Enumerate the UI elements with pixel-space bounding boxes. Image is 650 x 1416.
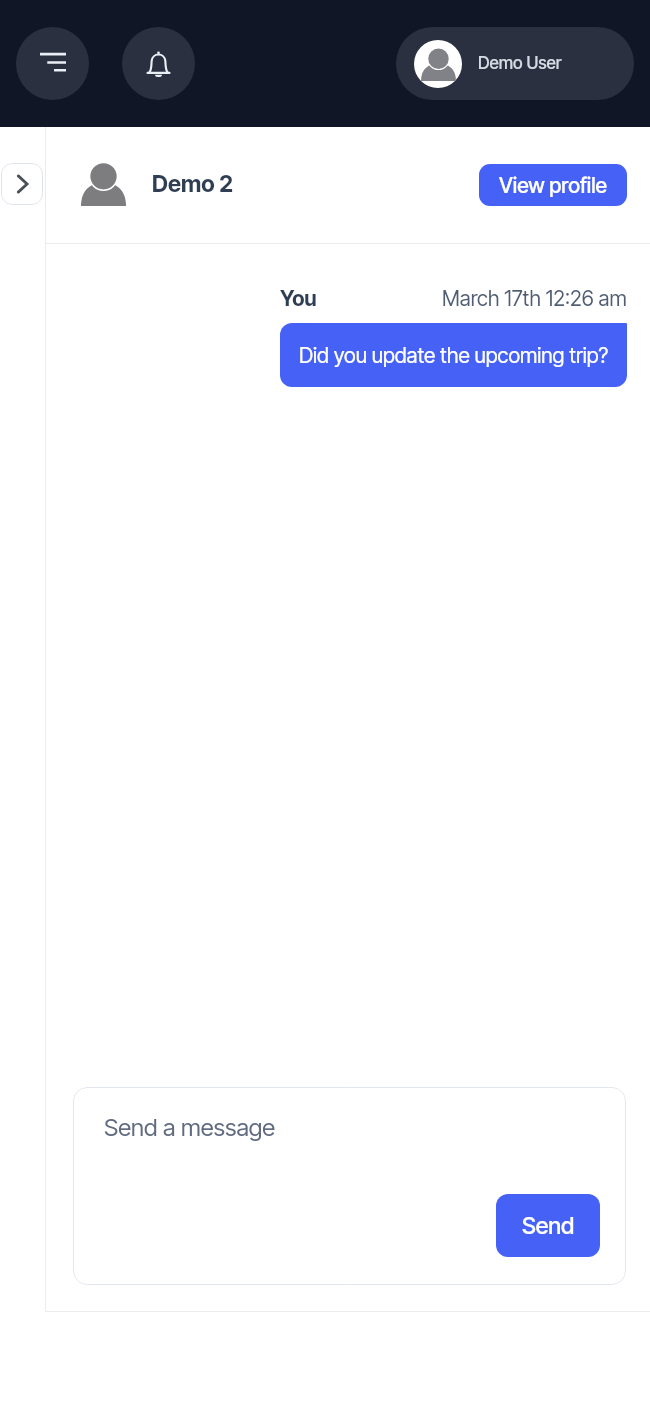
- staticText: View profile: [499, 173, 607, 198]
- button[interactable]: Notifications: [122, 27, 195, 100]
- staticText: Demo User: [478, 53, 562, 74]
- button[interactable]: Demo 2: [81, 162, 233, 209]
- button[interactable]: View profile: [479, 164, 627, 206]
- staticText: Did you update the upcoming trip?: [299, 343, 609, 368]
- staticText: March 17th 12:26 am: [442, 286, 627, 311]
- staticText: Send a message: [104, 1113, 276, 1142]
- button[interactable]: Demo User: [396, 27, 634, 100]
- button[interactable]: Menu: [16, 27, 89, 100]
- button[interactable]: Send a message: [73, 1087, 626, 1285]
- button[interactable]: Expand sidebar: [1, 163, 43, 205]
- staticText: You: [280, 286, 317, 311]
- staticText: Send: [522, 1212, 575, 1240]
- button[interactable]: Send: [496, 1194, 600, 1257]
- staticText: Demo 2: [152, 170, 233, 198]
